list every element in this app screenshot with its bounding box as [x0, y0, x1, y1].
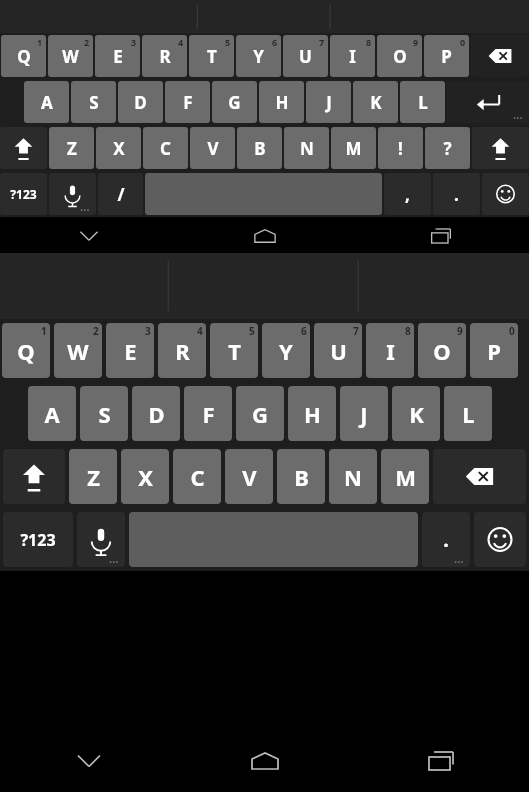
button[interactable]: K — [392, 386, 440, 441]
button[interactable]: Home — [177, 219, 353, 253]
button[interactable]: ! — [378, 127, 423, 169]
button[interactable]: S — [71, 81, 116, 123]
staticText: Q — [17, 336, 35, 366]
button[interactable]: Emoji — [482, 173, 529, 215]
staticText: V — [242, 462, 257, 492]
button[interactable]: Home — [177, 730, 353, 792]
staticText: Z — [67, 137, 77, 160]
button[interactable]: Hide keyboard — [0, 219, 177, 253]
button[interactable]: R — [158, 323, 206, 378]
staticText: 3 — [145, 324, 151, 338]
button[interactable]: Z — [49, 127, 94, 169]
staticText: , — [405, 183, 410, 206]
button[interactable]: D — [118, 81, 163, 123]
button[interactable]: X — [96, 127, 141, 169]
button[interactable]: ?123 — [0, 173, 47, 215]
button[interactable]: O — [377, 35, 422, 77]
staticText: 0 — [460, 36, 466, 48]
button[interactable]: Recent apps — [353, 730, 529, 792]
staticText: S — [89, 91, 99, 114]
staticText: 6 — [272, 36, 278, 48]
button[interactable]: E — [95, 35, 140, 77]
staticText: C — [190, 462, 205, 492]
button[interactable]: Hide keyboard — [0, 730, 177, 792]
button[interactable]: , — [384, 173, 431, 215]
button[interactable]: C — [173, 449, 221, 504]
button[interactable]: H — [259, 81, 304, 123]
button[interactable]: O — [418, 323, 466, 378]
button[interactable]: X — [121, 449, 169, 504]
button[interactable]: V — [190, 127, 235, 169]
button[interactable]: C — [143, 127, 188, 169]
staticText: M — [345, 137, 362, 160]
button[interactable]: . — [422, 512, 470, 567]
button[interactable]: Backspace — [433, 449, 526, 504]
staticText: A — [41, 91, 53, 114]
button[interactable]: ?123 — [3, 512, 73, 567]
button[interactable]: J — [340, 386, 388, 441]
button[interactable]: F — [184, 386, 232, 441]
button[interactable]: L — [444, 386, 492, 441]
button[interactable]: F — [165, 81, 210, 123]
button[interactable]: Shift — [3, 449, 65, 504]
button[interactable]: N — [284, 127, 329, 169]
button[interactable]: Recent apps — [353, 219, 529, 253]
button[interactable]: J — [306, 81, 351, 123]
button[interactable]: H — [288, 386, 336, 441]
button[interactable]: ? — [425, 127, 470, 169]
button[interactable]: D — [132, 386, 180, 441]
staticText: ? — [443, 137, 452, 160]
button[interactable]: I — [330, 35, 375, 77]
button[interactable]: T — [210, 323, 258, 378]
button[interactable]: I — [366, 323, 414, 378]
button[interactable]: . — [433, 173, 480, 215]
button[interactable]: Y — [236, 35, 281, 77]
button[interactable]: Voice input — [77, 512, 125, 567]
button[interactable]: B — [237, 127, 282, 169]
button[interactable]: V — [225, 449, 273, 504]
staticText: ?123 — [10, 186, 37, 202]
button[interactable]: L — [400, 81, 445, 123]
button[interactable]: T — [189, 35, 234, 77]
button[interactable]: Shift — [472, 127, 529, 169]
button[interactable]: M — [381, 449, 429, 504]
button[interactable]: W — [54, 323, 102, 378]
button[interactable]: N — [329, 449, 377, 504]
staticText: I — [349, 45, 356, 68]
button[interactable]: K — [353, 81, 398, 123]
button[interactable]: B — [277, 449, 325, 504]
button[interactable]: G — [212, 81, 257, 123]
staticText: E — [113, 45, 123, 68]
button[interactable]: P — [470, 323, 518, 378]
button[interactable]: S — [80, 386, 128, 441]
staticText: S — [98, 399, 111, 429]
button[interactable]: A — [28, 386, 76, 441]
button[interactable]: Backspace — [471, 35, 529, 77]
button[interactable]: Q — [1, 35, 46, 77]
staticText: B — [294, 462, 309, 492]
button[interactable]: R — [142, 35, 187, 77]
button[interactable]: Enter — [447, 81, 529, 123]
button[interactable]: M — [331, 127, 376, 169]
button[interactable]: P — [424, 35, 469, 77]
staticText: T — [228, 336, 241, 366]
button[interactable]: E — [106, 323, 154, 378]
staticText: 6 — [301, 324, 307, 338]
staticText: . — [443, 526, 449, 553]
button[interactable]: G — [236, 386, 284, 441]
button[interactable]: W — [48, 35, 93, 77]
button[interactable]: U — [283, 35, 328, 77]
button[interactable]: Z — [69, 449, 117, 504]
button[interactable]: Y — [262, 323, 310, 378]
button[interactable]: U — [314, 323, 362, 378]
staticText: D — [134, 91, 147, 114]
button[interactable]: A — [24, 81, 69, 123]
button[interactable]: Emoji — [474, 512, 526, 567]
staticText: 4 — [178, 36, 184, 48]
button[interactable]: Shift — [0, 127, 47, 169]
button[interactable]: Voice input — [49, 173, 96, 215]
button[interactable]: Q — [2, 323, 50, 378]
button[interactable]: / — [98, 173, 143, 215]
